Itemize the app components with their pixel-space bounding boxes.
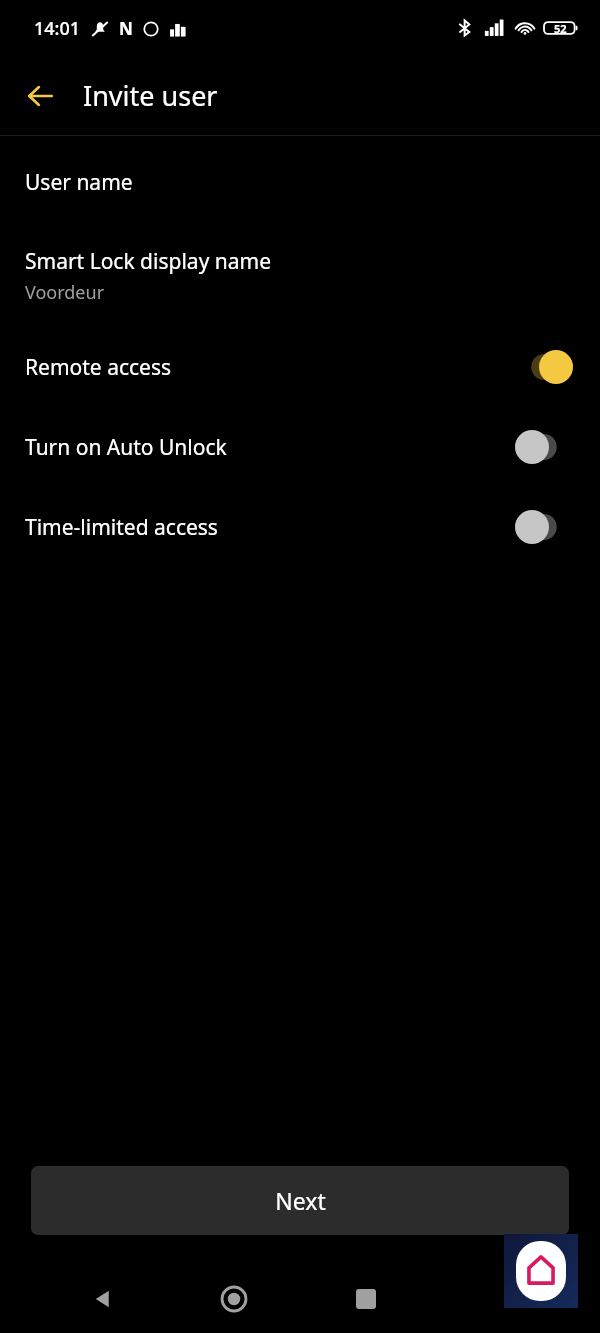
- staticText: 52: [554, 21, 567, 36]
- button[interactable]: Toggle on: [513, 347, 575, 387]
- button[interactable]: Next: [31, 1166, 569, 1235]
- button[interactable]: App shortcut: [504, 1234, 578, 1308]
- button[interactable]: Back: [12, 68, 68, 124]
- button[interactable]: Time-limited access: [0, 501, 600, 553]
- staticText: Voordeur: [25, 280, 105, 305]
- staticText: N: [119, 17, 133, 40]
- staticText: Turn on Auto Unlock: [25, 433, 227, 462]
- button[interactable]: Smart Lock display name: [0, 241, 600, 311]
- staticText: User name: [25, 168, 133, 197]
- button[interactable]: Home: [206, 1271, 262, 1327]
- button[interactable]: Toggle off: [513, 507, 575, 547]
- staticText: Invite user: [83, 77, 218, 114]
- button[interactable]: Back: [75, 1271, 131, 1327]
- button[interactable]: Toggle off: [513, 427, 575, 467]
- button[interactable]: Turn on Auto Unlock: [0, 421, 600, 473]
- staticText: Remote access: [25, 353, 172, 382]
- button[interactable]: Recent apps: [338, 1271, 394, 1327]
- staticText: Next: [275, 1185, 326, 1216]
- staticText: 14:01: [34, 16, 81, 41]
- button[interactable]: Remote access: [0, 341, 600, 393]
- staticText: Smart Lock display name: [25, 247, 272, 276]
- staticText: Time-limited access: [25, 513, 218, 542]
- button[interactable]: User name: [0, 162, 600, 203]
